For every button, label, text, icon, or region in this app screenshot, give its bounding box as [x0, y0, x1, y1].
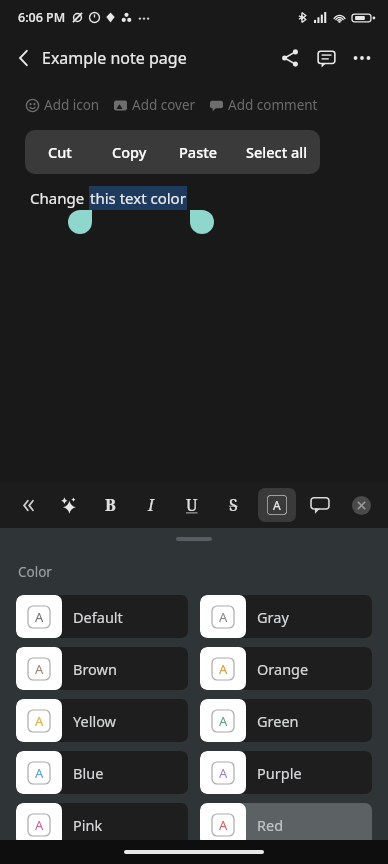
- staticText: A: [219, 660, 228, 678]
- staticText: 6:06 PM: [18, 9, 66, 26]
- staticText: Pink: [73, 815, 103, 835]
- button[interactable]: Add icon: [26, 92, 100, 118]
- button[interactable]: Cut: [25, 130, 95, 174]
- button[interactable]: A: [16, 595, 188, 638]
- staticText: A: [219, 816, 228, 834]
- staticText: A: [35, 764, 44, 782]
- staticText: A: [273, 497, 281, 513]
- button[interactable]: More options: [344, 40, 380, 76]
- staticText: Example note page: [42, 47, 187, 69]
- staticText: Default: [73, 607, 123, 627]
- staticText: Add cover: [132, 96, 196, 114]
- staticText: U: [186, 494, 198, 516]
- staticText: Green: [257, 711, 299, 731]
- button[interactable]: Back: [4, 38, 44, 78]
- button[interactable]: I: [134, 485, 168, 525]
- staticText: Add icon: [44, 96, 100, 114]
- button[interactable]: A: [200, 595, 372, 638]
- button[interactable]: A: [200, 803, 372, 846]
- button[interactable]: B: [93, 485, 127, 525]
- button[interactable]: A: [200, 647, 372, 690]
- button[interactable]: A: [16, 751, 188, 794]
- button[interactable]: Add comment: [210, 92, 318, 118]
- button[interactable]: A: [200, 699, 372, 742]
- staticText: Gray: [257, 607, 289, 627]
- button[interactable]: Collapse toolbar: [10, 485, 44, 525]
- button[interactable]: Add comment: [303, 485, 337, 525]
- staticText: Brown: [73, 659, 117, 679]
- button[interactable]: S: [216, 485, 250, 525]
- staticText: B: [105, 494, 116, 516]
- button[interactable]: Comments: [308, 40, 344, 76]
- button[interactable]: Select all: [233, 130, 320, 174]
- button[interactable]: Share: [272, 40, 308, 76]
- button[interactable]: Text color: [258, 488, 296, 522]
- button[interactable]: Close: [344, 485, 378, 525]
- staticText: A: [35, 712, 44, 730]
- staticText: Copy: [112, 142, 147, 162]
- staticText: Example note page: [26, 140, 265, 174]
- staticText: A: [35, 816, 44, 834]
- staticText: Add comment: [228, 96, 318, 114]
- staticText: Change: [30, 188, 89, 208]
- staticText: A: [219, 712, 228, 730]
- staticText: A: [35, 608, 44, 626]
- staticText: Select all: [246, 142, 308, 162]
- button[interactable]: AI assistant: [51, 485, 85, 525]
- button[interactable]: Add cover: [114, 92, 196, 118]
- staticText: S: [229, 494, 238, 516]
- staticText: A: [219, 764, 228, 782]
- staticText: Red: [257, 815, 284, 835]
- staticText: Paste: [179, 142, 218, 162]
- button[interactable]: Paste: [164, 130, 233, 174]
- staticText: Color: [18, 563, 52, 581]
- staticText: Orange: [257, 659, 309, 679]
- staticText: this text color: [90, 188, 186, 208]
- staticText: Cut: [48, 142, 72, 162]
- button[interactable]: Copy: [95, 130, 164, 174]
- staticText: Purple: [257, 763, 302, 783]
- button[interactable]: A: [16, 803, 188, 846]
- staticText: Blue: [73, 763, 104, 783]
- button[interactable]: A: [200, 751, 372, 794]
- button[interactable]: A: [16, 699, 188, 742]
- button[interactable]: A: [16, 647, 188, 690]
- staticText: A: [219, 608, 228, 626]
- button[interactable]: U: [175, 485, 209, 525]
- staticText: A: [35, 660, 44, 678]
- staticText: I: [148, 494, 154, 516]
- staticText: Yellow: [73, 711, 117, 731]
